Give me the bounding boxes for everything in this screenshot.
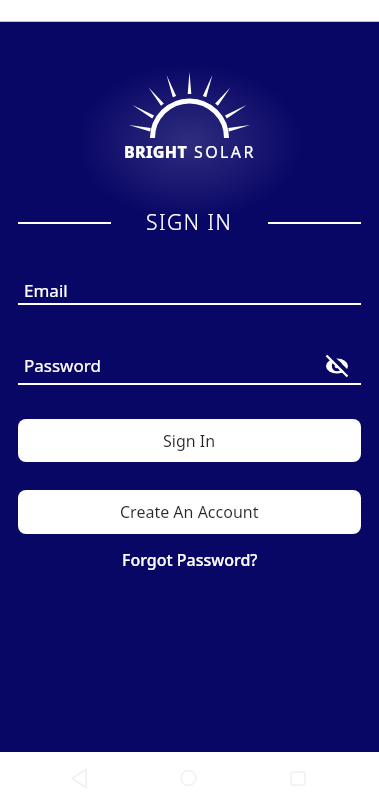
- staticText: Create An Account: [120, 501, 259, 523]
- button[interactable]: [18, 347, 317, 385]
- staticText: BRIGHT: [124, 141, 188, 163]
- staticText: Password: [24, 354, 101, 377]
- button[interactable]: Forgot Password?: [122, 549, 258, 571]
- button[interactable]: [18, 272, 361, 306]
- button[interactable]: Sign In: [18, 419, 361, 462]
- staticText: Sign In: [163, 430, 216, 452]
- staticText: Forgot Password?: [122, 549, 258, 571]
- staticText: SOLAR: [194, 141, 256, 163]
- staticText: Email: [24, 279, 68, 302]
- staticText: SIGN IN: [146, 208, 233, 237]
- button[interactable]: [322, 352, 350, 380]
- button[interactable]: Create An Account: [18, 490, 361, 534]
